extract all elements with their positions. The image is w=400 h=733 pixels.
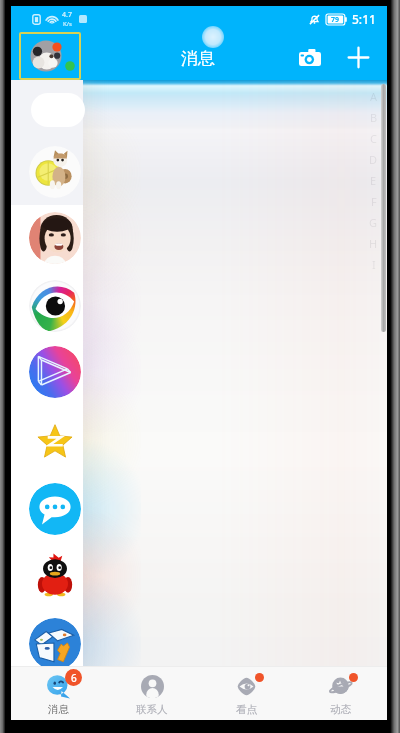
button[interactable]: 看点: [199, 666, 293, 720]
button[interactable]: Video: [29, 346, 81, 398]
button[interactable]: QQ Kandian: [29, 280, 81, 332]
button[interactable]: 6: [11, 666, 105, 720]
staticText: K/s: [63, 20, 72, 28]
staticText: 消息: [181, 48, 215, 69]
staticText: G: [369, 215, 378, 230]
staticText: F: [371, 194, 377, 209]
button[interactable]: Star: [29, 414, 81, 466]
staticText: C: [370, 131, 377, 146]
staticText: D: [369, 152, 378, 167]
staticText: 5:11: [352, 11, 376, 27]
staticText: B: [370, 110, 378, 125]
button[interactable]: Search: [31, 93, 85, 127]
staticText: H: [369, 236, 378, 251]
button[interactable]: Mail: [29, 618, 81, 670]
staticText: 看点: [236, 703, 257, 716]
staticText: 动态: [330, 703, 351, 716]
button[interactable]: 联系人: [105, 666, 199, 720]
button[interactable]: Camera: [292, 39, 328, 75]
staticText: I: [372, 257, 376, 272]
staticText: 79: [331, 15, 340, 25]
staticText: E: [370, 173, 377, 188]
staticText: 消息: [48, 703, 69, 716]
button[interactable]: Profile: [19, 32, 81, 80]
button[interactable]: Cat avatar: [29, 146, 81, 198]
button[interactable]: Add: [340, 39, 376, 75]
button[interactable]: 动态: [293, 666, 387, 720]
staticText: 6: [71, 671, 77, 685]
staticText: A: [370, 89, 378, 104]
staticText: 4.7: [62, 10, 72, 20]
button[interactable]: QQ: [29, 550, 81, 602]
button[interactable]: Group chat: [29, 483, 81, 535]
staticText: 联系人: [136, 703, 168, 716]
button[interactable]: Friend avatar: [29, 212, 81, 264]
